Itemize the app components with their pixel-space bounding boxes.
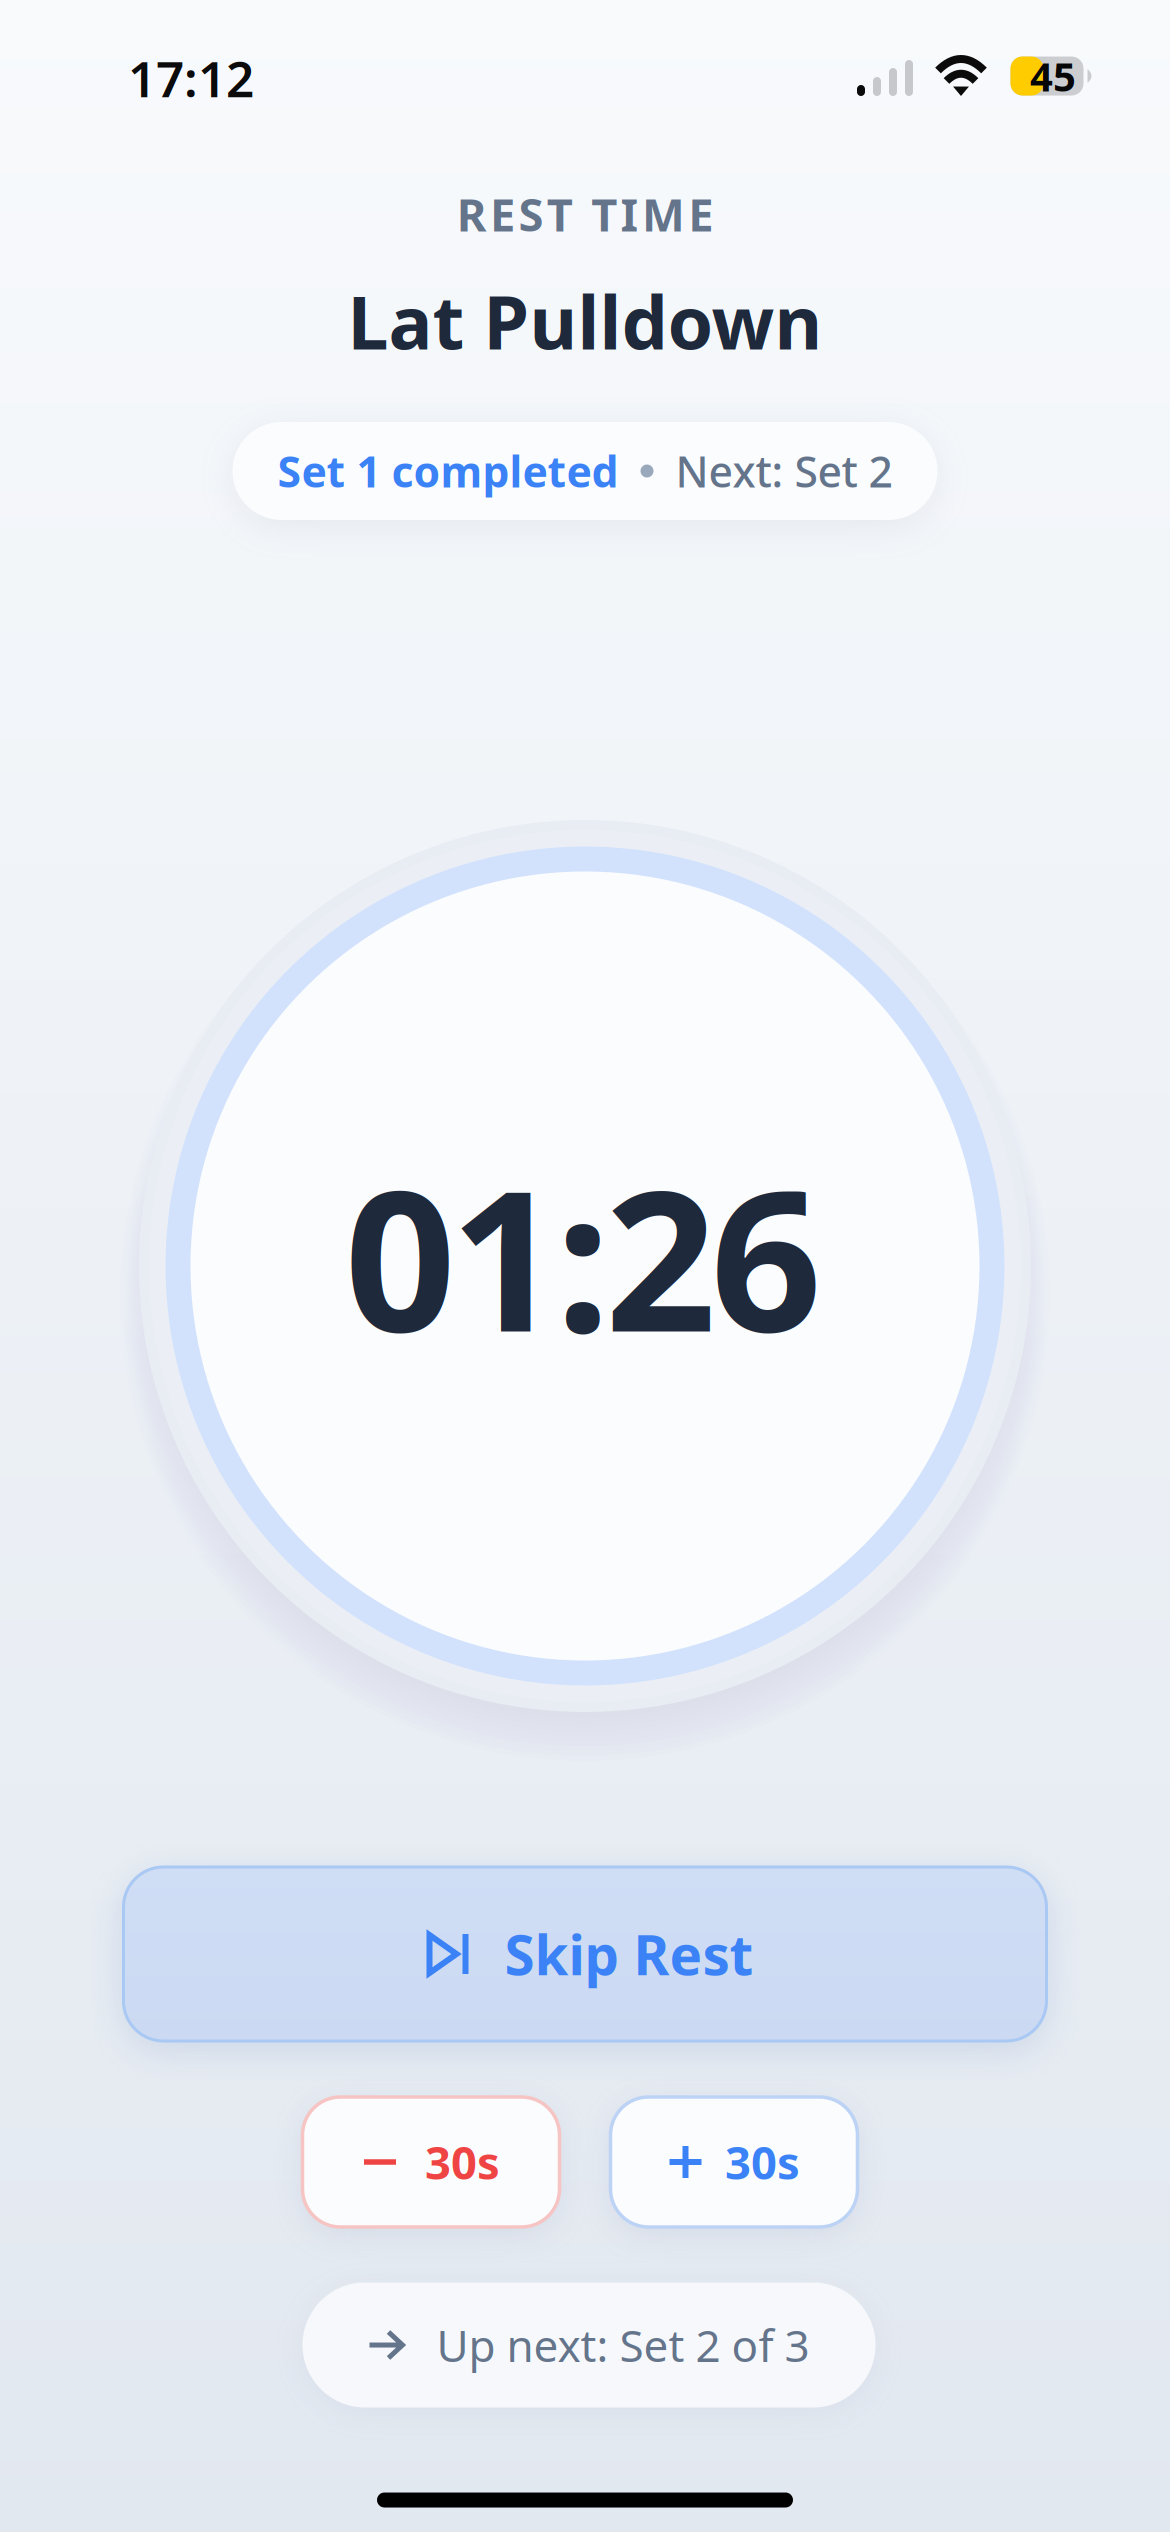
staticText: 17:12: [128, 45, 254, 111]
staticText: Lat Pulldown: [347, 272, 822, 370]
button[interactable]: Up next: Set 2 of 3: [302, 2282, 875, 2407]
staticText: 01:26: [344, 1127, 821, 1385]
staticText: REST TIME: [457, 184, 713, 244]
staticText: 30s: [725, 2132, 800, 2192]
staticText: Skip Rest: [504, 1918, 753, 1990]
staticText: 30s: [425, 2132, 500, 2192]
staticText: 45: [1030, 49, 1076, 102]
button[interactable]: Subtract 30 seconds: [302, 2097, 559, 2227]
button[interactable]: Add 30 seconds: [610, 2097, 857, 2227]
button[interactable]: Skip Rest: [123, 1867, 1046, 2041]
button[interactable]: Set 1 completed: [232, 422, 937, 520]
staticText: Next: Set 2: [675, 443, 892, 499]
staticText: Set 1 completed: [277, 443, 618, 499]
staticText: Up next: Set 2 of 3: [436, 2316, 809, 2374]
